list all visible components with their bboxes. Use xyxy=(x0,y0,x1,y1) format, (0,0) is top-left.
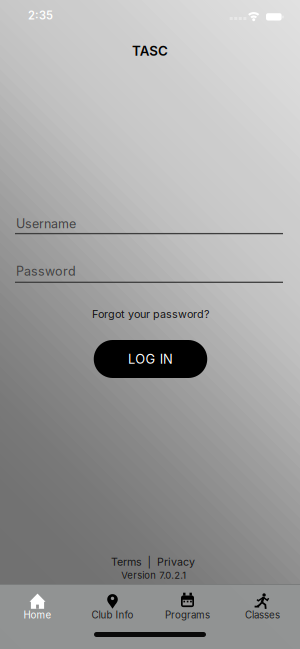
button[interactable]: Forgot your password? xyxy=(92,307,210,321)
staticText: Version 7.0.2.1 xyxy=(121,569,186,581)
staticText: 2:35 xyxy=(28,9,53,22)
button[interactable]: Privacy xyxy=(157,555,195,568)
staticText: Forgot your password? xyxy=(92,307,210,321)
staticText: Privacy xyxy=(157,555,195,568)
staticText: Terms xyxy=(111,555,142,568)
button[interactable]: Club Info xyxy=(75,585,150,629)
button[interactable]: Programs xyxy=(150,585,225,629)
staticText: Classes xyxy=(245,609,280,621)
staticText: | xyxy=(147,555,151,568)
staticText: Programs xyxy=(165,609,210,621)
button[interactable]: LOG IN xyxy=(94,340,207,378)
button[interactable]: Home xyxy=(0,585,75,629)
staticText: LOG IN xyxy=(128,351,173,367)
staticText: TASC xyxy=(132,43,168,59)
staticText: Password xyxy=(16,264,76,279)
button[interactable]: Classes xyxy=(225,585,300,629)
button[interactable]: Terms xyxy=(111,555,142,568)
staticText: Username xyxy=(16,216,76,231)
staticText: Home xyxy=(23,609,51,621)
staticText: Club Info xyxy=(91,609,133,621)
